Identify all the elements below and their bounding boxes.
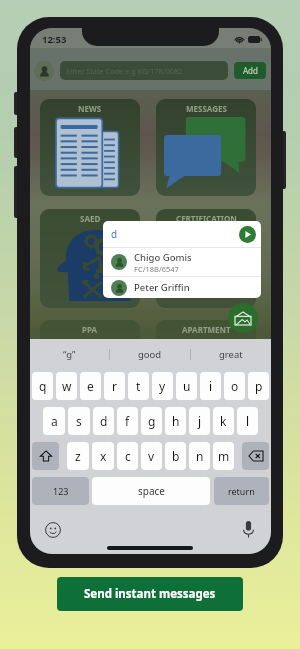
staticText: p	[255, 378, 263, 394]
button[interactable]: great	[191, 339, 271, 369]
staticText: Peter Griffin	[134, 281, 190, 294]
button[interactable]: f	[117, 407, 138, 435]
staticText: i	[209, 378, 213, 394]
button[interactable]: Send instant messages	[57, 577, 243, 611]
staticText: m	[218, 448, 230, 464]
button[interactable]: i	[200, 372, 221, 400]
button[interactable]: CERTIFICATION	[156, 209, 256, 308]
button[interactable]: w	[56, 372, 77, 400]
button[interactable]: good	[110, 339, 190, 369]
button[interactable]: u	[176, 372, 197, 400]
staticText: e	[87, 378, 94, 394]
button[interactable]: d	[93, 407, 114, 435]
staticText: Enter State Code e.g KG/17B/0082	[66, 66, 183, 76]
button[interactable]: Add	[234, 62, 266, 79]
staticText: t	[136, 378, 141, 394]
staticText: n	[196, 448, 204, 464]
button[interactable]: a	[43, 407, 65, 435]
button[interactable]: MESSAGES	[156, 99, 256, 196]
button[interactable]: Emoji	[45, 522, 61, 538]
staticText: APARTMENT	[182, 324, 231, 335]
staticText: a	[51, 413, 58, 429]
button[interactable]: “g”	[30, 339, 109, 369]
staticText: Chigo Gomis	[134, 251, 192, 264]
staticText: 12:53	[42, 33, 67, 46]
staticText: k	[220, 413, 227, 429]
staticText: SAED	[80, 213, 101, 224]
button[interactable]: Peter Griffin	[111, 277, 261, 298]
button[interactable]: PPA	[40, 320, 140, 360]
staticText: good	[138, 348, 162, 361]
staticText: Add	[243, 65, 258, 76]
button[interactable]: g	[141, 407, 162, 435]
button[interactable]: Compose message	[228, 303, 258, 333]
staticText: y	[159, 378, 166, 394]
button[interactable]: y	[152, 372, 173, 400]
staticText: x	[100, 448, 107, 464]
staticText: PPA	[82, 324, 98, 335]
button[interactable]: space	[92, 477, 210, 505]
staticText: u	[183, 378, 191, 394]
button[interactable]: Chigo Gomis	[111, 248, 261, 276]
staticText: l	[246, 413, 250, 429]
button[interactable]: h	[165, 407, 186, 435]
staticText: MESSAGES	[186, 103, 227, 114]
button[interactable]: e	[80, 372, 101, 400]
button[interactable]: Profile	[34, 61, 54, 81]
staticText: Send instant messages	[84, 586, 216, 602]
staticText: j	[198, 413, 202, 429]
button[interactable]: l	[237, 407, 258, 435]
staticText: CERTIFICATION	[176, 213, 237, 224]
button[interactable]: b	[165, 442, 186, 470]
staticText: 123	[53, 485, 69, 497]
staticText: d	[100, 413, 108, 429]
button[interactable]: r	[104, 372, 125, 400]
button[interactable]: APARTMENT	[156, 320, 256, 360]
button[interactable]: 123	[32, 477, 89, 505]
button[interactable]: t	[128, 372, 149, 400]
staticText: f	[125, 413, 130, 429]
button[interactable]: Voice input	[242, 521, 255, 538]
staticText: r	[112, 378, 117, 394]
staticText: o	[231, 378, 239, 394]
button[interactable]: s	[68, 407, 90, 435]
button[interactable]: Shift	[32, 442, 59, 470]
staticText: d	[111, 227, 118, 241]
button[interactable]: return	[214, 477, 269, 505]
button[interactable]: j	[189, 407, 210, 435]
staticText: s	[76, 413, 82, 429]
button[interactable]: Enter State Code e.g KG/17B/0082	[60, 61, 228, 80]
staticText: b	[172, 448, 180, 464]
button[interactable]: x	[92, 442, 114, 470]
button[interactable]: k	[213, 407, 234, 435]
staticText: return	[228, 485, 255, 497]
staticText: space	[138, 484, 165, 498]
staticText: NEWS	[78, 103, 102, 114]
staticText: v	[148, 448, 155, 464]
button[interactable]: c	[117, 442, 138, 470]
staticText: c	[125, 448, 131, 464]
button[interactable]: q	[32, 372, 53, 400]
staticText: FC/18B/6547	[134, 264, 179, 274]
staticText: “g”	[63, 348, 76, 361]
staticText: great	[219, 348, 243, 361]
staticText: w	[62, 378, 72, 394]
button[interactable]: p	[248, 372, 269, 400]
button[interactable]: m	[213, 442, 234, 470]
staticText: q	[39, 378, 47, 394]
button[interactable]: Search	[239, 226, 256, 243]
button[interactable]: v	[141, 442, 162, 470]
button[interactable]: NEWS	[40, 99, 140, 196]
button[interactable]: SAED	[40, 209, 140, 308]
button[interactable]: z	[67, 442, 89, 470]
button[interactable]: Backspace	[242, 442, 269, 470]
staticText: h	[172, 413, 180, 429]
button[interactable]: o	[224, 372, 245, 400]
staticText: z	[75, 448, 81, 464]
button[interactable]: n	[189, 442, 210, 470]
staticText: g	[148, 413, 156, 429]
